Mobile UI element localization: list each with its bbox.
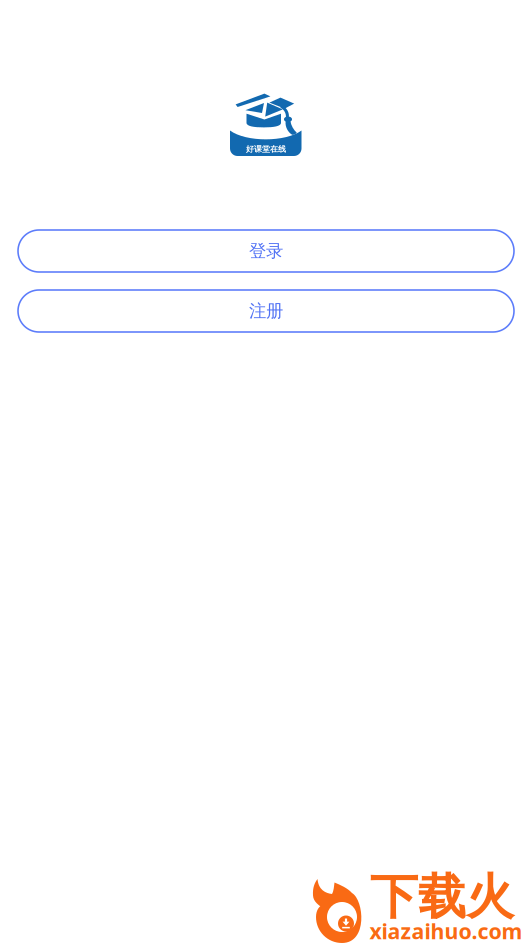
staticText: 下载火 — [370, 867, 514, 926]
staticText: 登录 — [249, 240, 283, 262]
staticText: 注册 — [249, 300, 283, 322]
button[interactable]: 注册 — [18, 290, 514, 332]
staticText: 好课堂在线 — [246, 144, 286, 154]
button[interactable]: 登录 — [18, 230, 514, 272]
staticText: xiazaihuo.com — [369, 917, 522, 944]
